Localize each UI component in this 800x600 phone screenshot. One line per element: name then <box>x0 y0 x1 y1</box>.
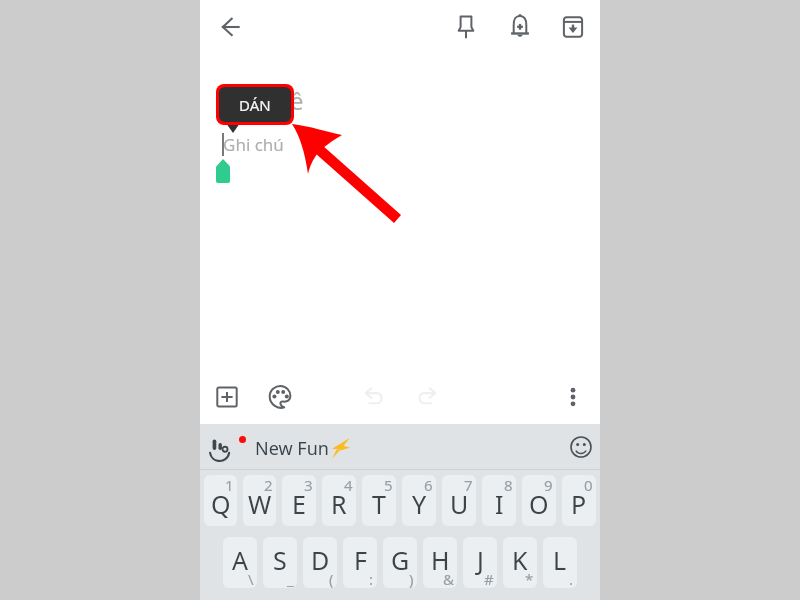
button[interactable]: U <box>442 475 476 526</box>
staticText: * <box>525 569 534 588</box>
button[interactable]: T <box>362 475 396 526</box>
staticText: . <box>569 569 574 588</box>
button[interactable]: O <box>522 475 556 526</box>
staticText: S <box>273 543 287 577</box>
button[interactable]: Emoji <box>570 436 592 458</box>
button[interactable]: G <box>383 537 417 588</box>
button[interactable]: Redo <box>409 378 445 414</box>
staticText: New Fun <box>255 436 329 461</box>
button[interactable]: Archive <box>555 9 591 45</box>
staticText: F <box>354 543 367 577</box>
staticText: 7 <box>464 475 473 495</box>
button[interactable]: Keyboard settings <box>209 437 230 457</box>
button[interactable]: Back <box>213 9 249 45</box>
staticText: : <box>369 569 374 588</box>
button[interactable]: P <box>562 475 596 526</box>
staticText: H <box>431 543 450 577</box>
staticText: ) <box>409 569 414 588</box>
staticText: P <box>571 487 587 521</box>
staticText: Q <box>211 487 231 521</box>
button[interactable]: S <box>263 537 297 588</box>
button[interactable]: H <box>423 537 457 588</box>
staticText: E <box>292 487 306 521</box>
button[interactable]: I <box>482 475 516 526</box>
button[interactable]: DÁN <box>219 87 291 122</box>
staticText: G <box>391 543 410 577</box>
staticText: U <box>450 487 469 521</box>
button[interactable]: R <box>322 475 356 526</box>
staticText: W <box>248 487 272 521</box>
button[interactable]: Pin <box>448 9 484 45</box>
staticText: ( <box>329 569 334 588</box>
staticText: A <box>232 543 248 577</box>
staticText: 9 <box>544 475 553 495</box>
button[interactable]: A <box>223 537 257 588</box>
button[interactable]: Y <box>402 475 436 526</box>
button[interactable]: Color palette <box>262 379 298 415</box>
staticText: D <box>311 543 330 577</box>
button[interactable]: Keyboard settings <box>200 424 600 469</box>
button[interactable]: Reminder <box>502 9 538 45</box>
staticText: K <box>512 543 528 577</box>
button[interactable]: W <box>243 475 276 526</box>
staticText: DÁN <box>239 95 271 115</box>
button[interactable]: D <box>303 537 337 588</box>
staticText: 1 <box>225 475 234 495</box>
button[interactable]: Undo <box>356 378 392 414</box>
staticText: 0 <box>584 475 593 495</box>
button[interactable]: More options <box>555 379 591 415</box>
staticText: R <box>331 487 347 521</box>
button[interactable]: L <box>543 537 577 588</box>
staticText: # <box>484 569 494 588</box>
staticText: J <box>477 543 484 577</box>
button[interactable]: J <box>463 537 497 588</box>
staticText: 5 <box>384 475 393 495</box>
staticText: 4 <box>344 475 353 495</box>
staticText: Y <box>412 487 427 521</box>
staticText: _ <box>287 569 294 588</box>
staticText: & <box>443 569 454 588</box>
staticText: 8 <box>504 475 513 495</box>
staticText: I <box>495 487 504 521</box>
staticText: L <box>553 543 567 577</box>
button[interactable]: E <box>282 475 316 526</box>
staticText: 6 <box>424 475 433 495</box>
staticText: \ <box>248 569 254 588</box>
button[interactable]: Add <box>209 379 245 415</box>
button[interactable]: F <box>343 537 377 588</box>
staticText: T <box>372 487 386 521</box>
staticText: Ghi chú <box>223 133 284 156</box>
staticText: O <box>529 487 549 521</box>
staticText: 3 <box>304 475 313 495</box>
button[interactable]: K <box>503 537 537 588</box>
button[interactable]: Q <box>204 475 237 526</box>
staticText: Tiêu đề <box>221 84 304 117</box>
staticText: 2 <box>264 475 273 495</box>
